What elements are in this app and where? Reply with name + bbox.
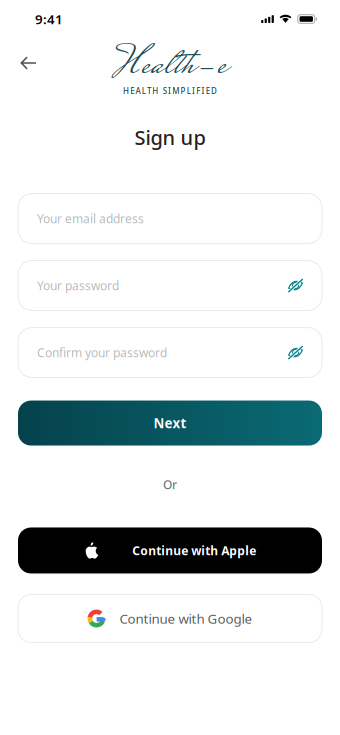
button[interactable]: Show password bbox=[282, 340, 309, 365]
button[interactable]: Show password bbox=[282, 273, 309, 298]
staticText: Sign up bbox=[134, 124, 205, 151]
staticText: 9:41 bbox=[35, 10, 63, 28]
staticText: Or bbox=[163, 477, 177, 492]
button[interactable]: Continue with Google bbox=[0, 594, 340, 642]
staticText: Health-e bbox=[113, 35, 227, 98]
button[interactable]: Back bbox=[12, 48, 46, 78]
staticText: HEALTH SIMPLIFIED bbox=[123, 86, 217, 96]
staticText: Next bbox=[153, 414, 186, 432]
staticText: Continue with Apple bbox=[132, 542, 256, 558]
staticText: Your password bbox=[37, 278, 119, 293]
staticText: Continue with Google bbox=[119, 610, 252, 627]
button[interactable]: Continue with Apple bbox=[0, 527, 340, 573]
staticText: Your email address bbox=[37, 211, 144, 226]
staticText: Confirm your password bbox=[37, 345, 167, 360]
button[interactable]: Next bbox=[0, 401, 340, 446]
